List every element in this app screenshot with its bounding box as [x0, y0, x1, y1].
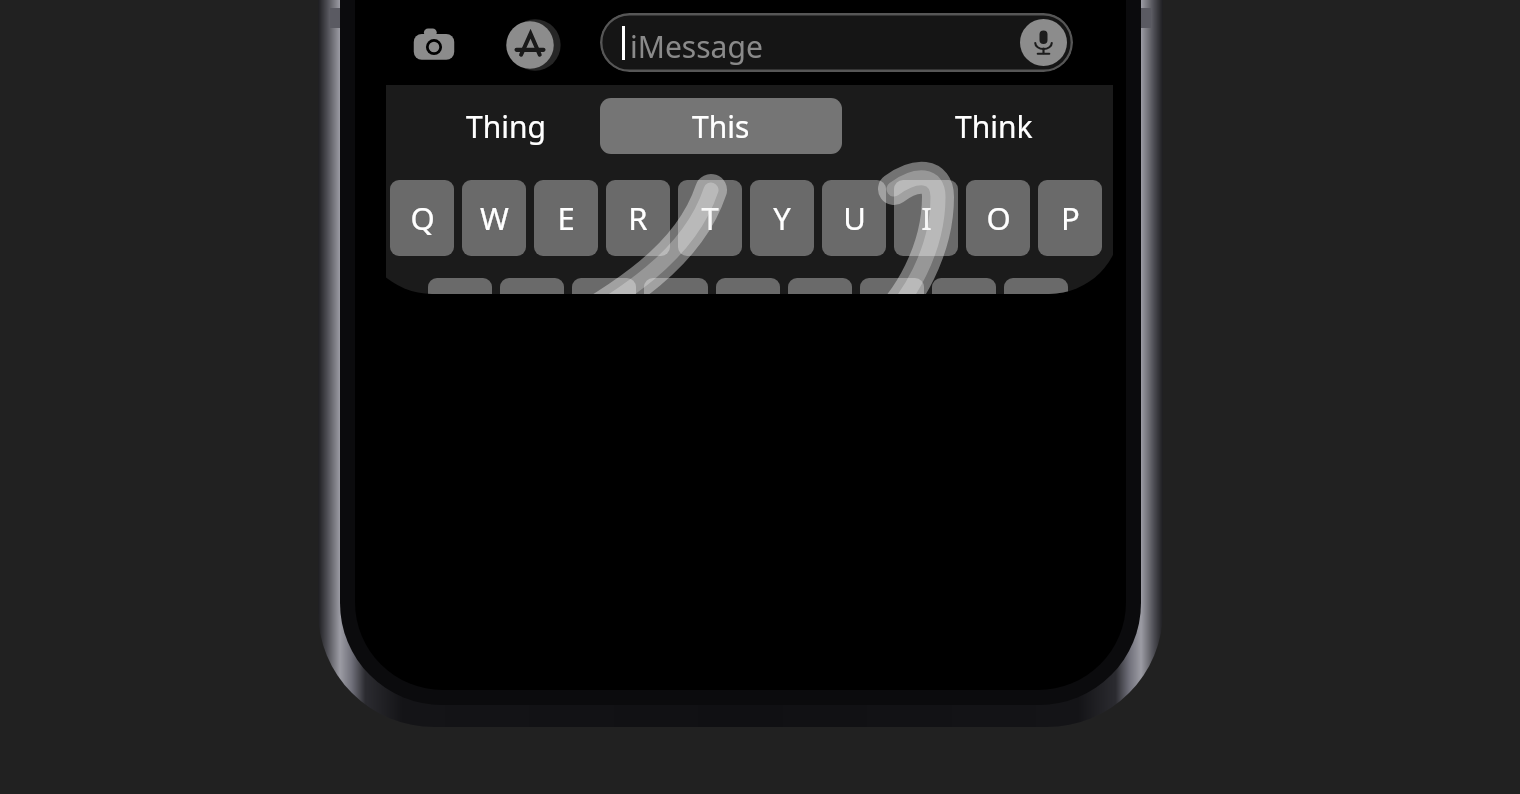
button[interactable]: Camera	[408, 19, 460, 71]
staticText: This	[692, 106, 750, 147]
button[interactable]: W	[462, 180, 526, 256]
button[interactable]: P	[1038, 180, 1102, 256]
staticText: Q	[410, 197, 435, 239]
button[interactable]: Thing	[446, 99, 566, 153]
staticText: W	[480, 197, 509, 239]
button[interactable]: T	[678, 180, 742, 256]
button[interactable]: F	[644, 278, 708, 294]
button[interactable]: A	[428, 278, 492, 294]
staticText: T	[701, 197, 719, 239]
button[interactable]: Apps	[502, 17, 558, 73]
staticText: Think	[955, 106, 1033, 147]
button[interactable]: S	[500, 278, 564, 294]
button[interactable]: E	[534, 180, 598, 256]
button[interactable]: I	[894, 180, 958, 256]
button[interactable]: U	[822, 180, 886, 256]
button[interactable]: L	[1004, 278, 1068, 294]
staticText: iMessage	[630, 26, 763, 67]
button[interactable]: iMessage	[600, 13, 1073, 72]
button[interactable]: Y	[750, 180, 814, 256]
staticText: R	[628, 197, 648, 239]
staticText: O	[986, 197, 1011, 239]
button[interactable]: Dictate	[1020, 19, 1067, 66]
button[interactable]: J	[860, 278, 924, 294]
staticText: U	[843, 197, 866, 239]
button[interactable]: O	[966, 180, 1030, 256]
button[interactable]: R	[606, 180, 670, 256]
button[interactable]: H	[788, 278, 852, 294]
staticText: Thing	[466, 106, 546, 147]
button[interactable]: This	[600, 98, 842, 154]
staticText: E	[557, 197, 575, 239]
button[interactable]: Think	[934, 99, 1054, 153]
button[interactable]: D	[572, 278, 636, 294]
staticText: P	[1061, 197, 1080, 239]
button[interactable]: Q	[390, 180, 454, 256]
staticText: I	[921, 197, 932, 239]
button[interactable]: K	[932, 278, 996, 294]
staticText: Y	[773, 197, 791, 239]
button[interactable]: G	[716, 278, 780, 294]
